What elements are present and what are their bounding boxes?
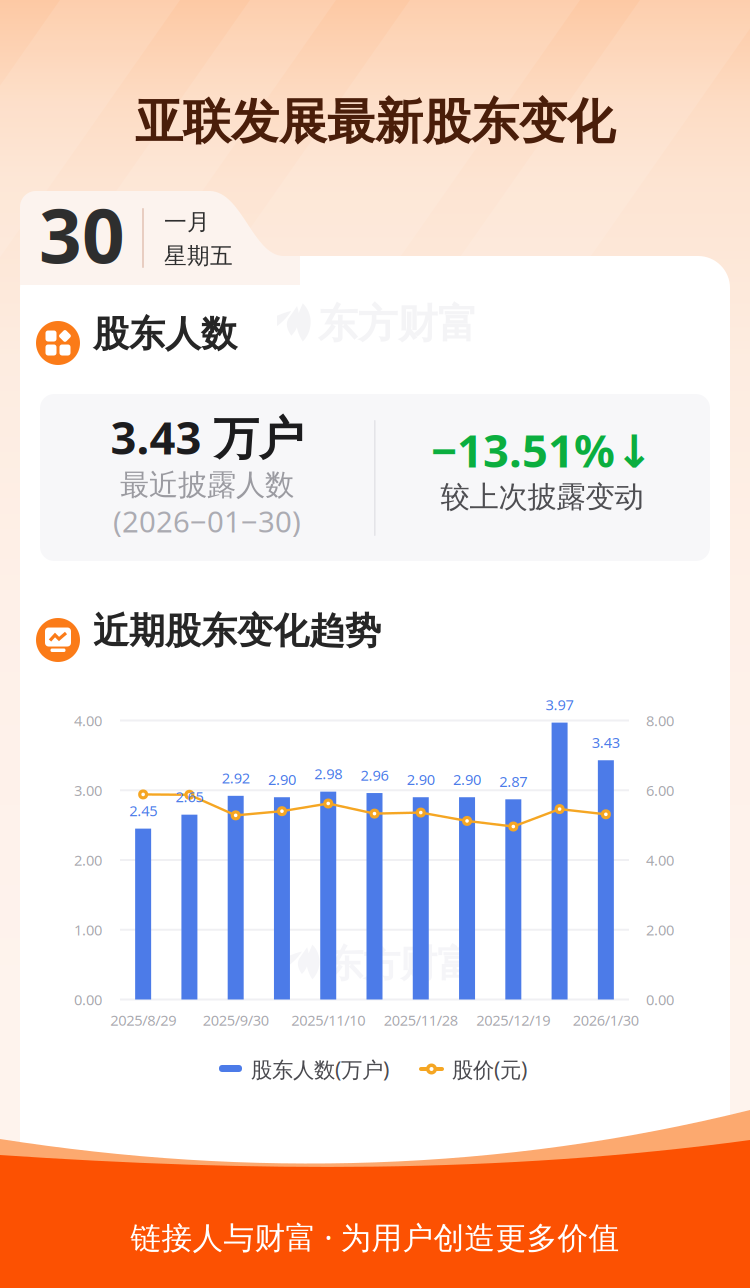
staticText: 1.00 <box>74 920 102 939</box>
staticText: 2.00 <box>646 920 674 939</box>
staticText: 最近披露人数 <box>120 467 294 503</box>
staticText: 6.00 <box>646 780 674 800</box>
staticText: 2025/11/28 <box>384 1010 458 1030</box>
staticText: 2.65 <box>175 787 203 806</box>
staticText: (2026−01−30) <box>113 501 301 540</box>
staticText: 2025/8/29 <box>110 1010 176 1030</box>
staticText: 2.90 <box>268 769 296 789</box>
staticText: 东方财富 <box>326 941 474 987</box>
staticText: 星期五 <box>164 242 233 270</box>
staticText: 近期股东变化趋势 <box>93 609 381 653</box>
staticText: 30 <box>39 184 125 284</box>
staticText: 一月 <box>164 208 210 236</box>
staticText: 3.43 万户 <box>110 407 303 467</box>
staticText: 0.00 <box>646 990 674 1009</box>
staticText: 4.00 <box>74 711 102 730</box>
staticText: 链接人与财富 · 为用户创造更多价值 <box>130 1217 619 1257</box>
staticText: 较上次披露变动 <box>440 479 643 515</box>
staticText: 3.43 <box>592 732 620 752</box>
staticText: 3.97 <box>546 695 574 714</box>
staticText: 东方财富 <box>318 299 478 348</box>
button[interactable]: 30 <box>20 191 300 285</box>
staticText: 2025/12/19 <box>476 1010 550 1030</box>
staticText: 2.98 <box>314 764 342 783</box>
staticText: 亚联发展最新股东变化 <box>135 92 615 151</box>
staticText: 2025/11/10 <box>291 1010 365 1030</box>
staticText: 2.45 <box>129 801 157 820</box>
staticText: 2026/1/30 <box>573 1010 639 1030</box>
staticText: 4.00 <box>646 850 674 870</box>
staticText: 股东人数(万户) <box>251 1055 389 1083</box>
staticText: 2.87 <box>499 772 527 791</box>
staticText: −13.51%↓ <box>431 420 653 480</box>
staticText: 2.90 <box>453 769 481 789</box>
staticText: 股价(元) <box>452 1055 527 1083</box>
staticText: 2.92 <box>222 768 250 788</box>
staticText: 8.00 <box>646 711 674 730</box>
staticText: 2.90 <box>407 769 435 789</box>
staticText: 2.96 <box>360 765 388 785</box>
staticText: 0.00 <box>74 990 102 1009</box>
staticText: 2025/9/30 <box>203 1010 269 1030</box>
staticText: 股东人数 <box>93 312 237 356</box>
staticText: 2.00 <box>74 850 102 870</box>
staticText: 3.00 <box>74 780 102 800</box>
